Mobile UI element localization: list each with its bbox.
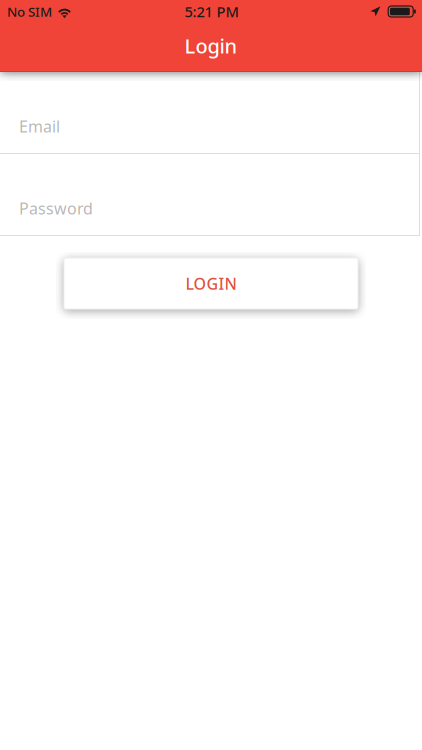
- staticText: Email: [19, 116, 60, 137]
- button[interactable]: LOGIN: [64, 258, 358, 309]
- button[interactable]: Email: [0, 72, 419, 154]
- staticText: Password: [19, 198, 93, 219]
- button[interactable]: Password: [0, 154, 419, 236]
- staticText: 5:21 PM: [184, 2, 238, 21]
- staticText: Login: [184, 32, 237, 59]
- staticText: No SIM: [7, 3, 52, 20]
- staticText: LOGIN: [185, 273, 236, 294]
